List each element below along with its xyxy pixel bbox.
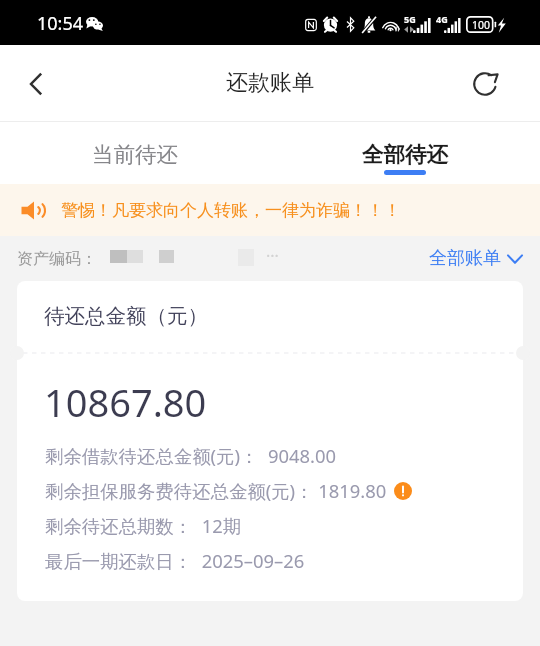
staticText: 全部账单: [429, 247, 501, 270]
staticText: 资产编码：: [17, 249, 97, 269]
staticText: 4G: [436, 13, 448, 25]
staticText: 剩余担保服务费待还总金额(元)： 1819.80: [45, 478, 387, 503]
button[interactable]: Back: [8, 55, 66, 113]
staticText: 警惕！凡要求向个人转账，一律为诈骗！！！: [61, 200, 401, 221]
staticText: 全部待还: [362, 141, 448, 168]
button[interactable]: 当前待还: [0, 122, 270, 184]
staticText: 剩余借款待还总金额(元)： 9048.00: [45, 443, 336, 468]
staticText: 100: [470, 18, 492, 32]
staticText: 还款账单: [226, 69, 314, 97]
staticText: 5G: [404, 13, 416, 25]
staticText: 剩余待还总期数： 12期: [45, 513, 242, 538]
staticText: ···: [266, 245, 279, 267]
button[interactable]: Refresh: [456, 55, 514, 113]
button[interactable]: 全部待还: [270, 122, 540, 184]
staticText: 待还总金额（元）: [44, 303, 208, 329]
staticText: 10867.80: [44, 376, 207, 428]
button[interactable]: 全部账单: [429, 247, 523, 270]
staticText: 当前待还: [92, 141, 178, 168]
staticText: 最后一期还款日： 2025–09–26: [45, 548, 305, 573]
staticText: 10:54: [37, 11, 84, 36]
